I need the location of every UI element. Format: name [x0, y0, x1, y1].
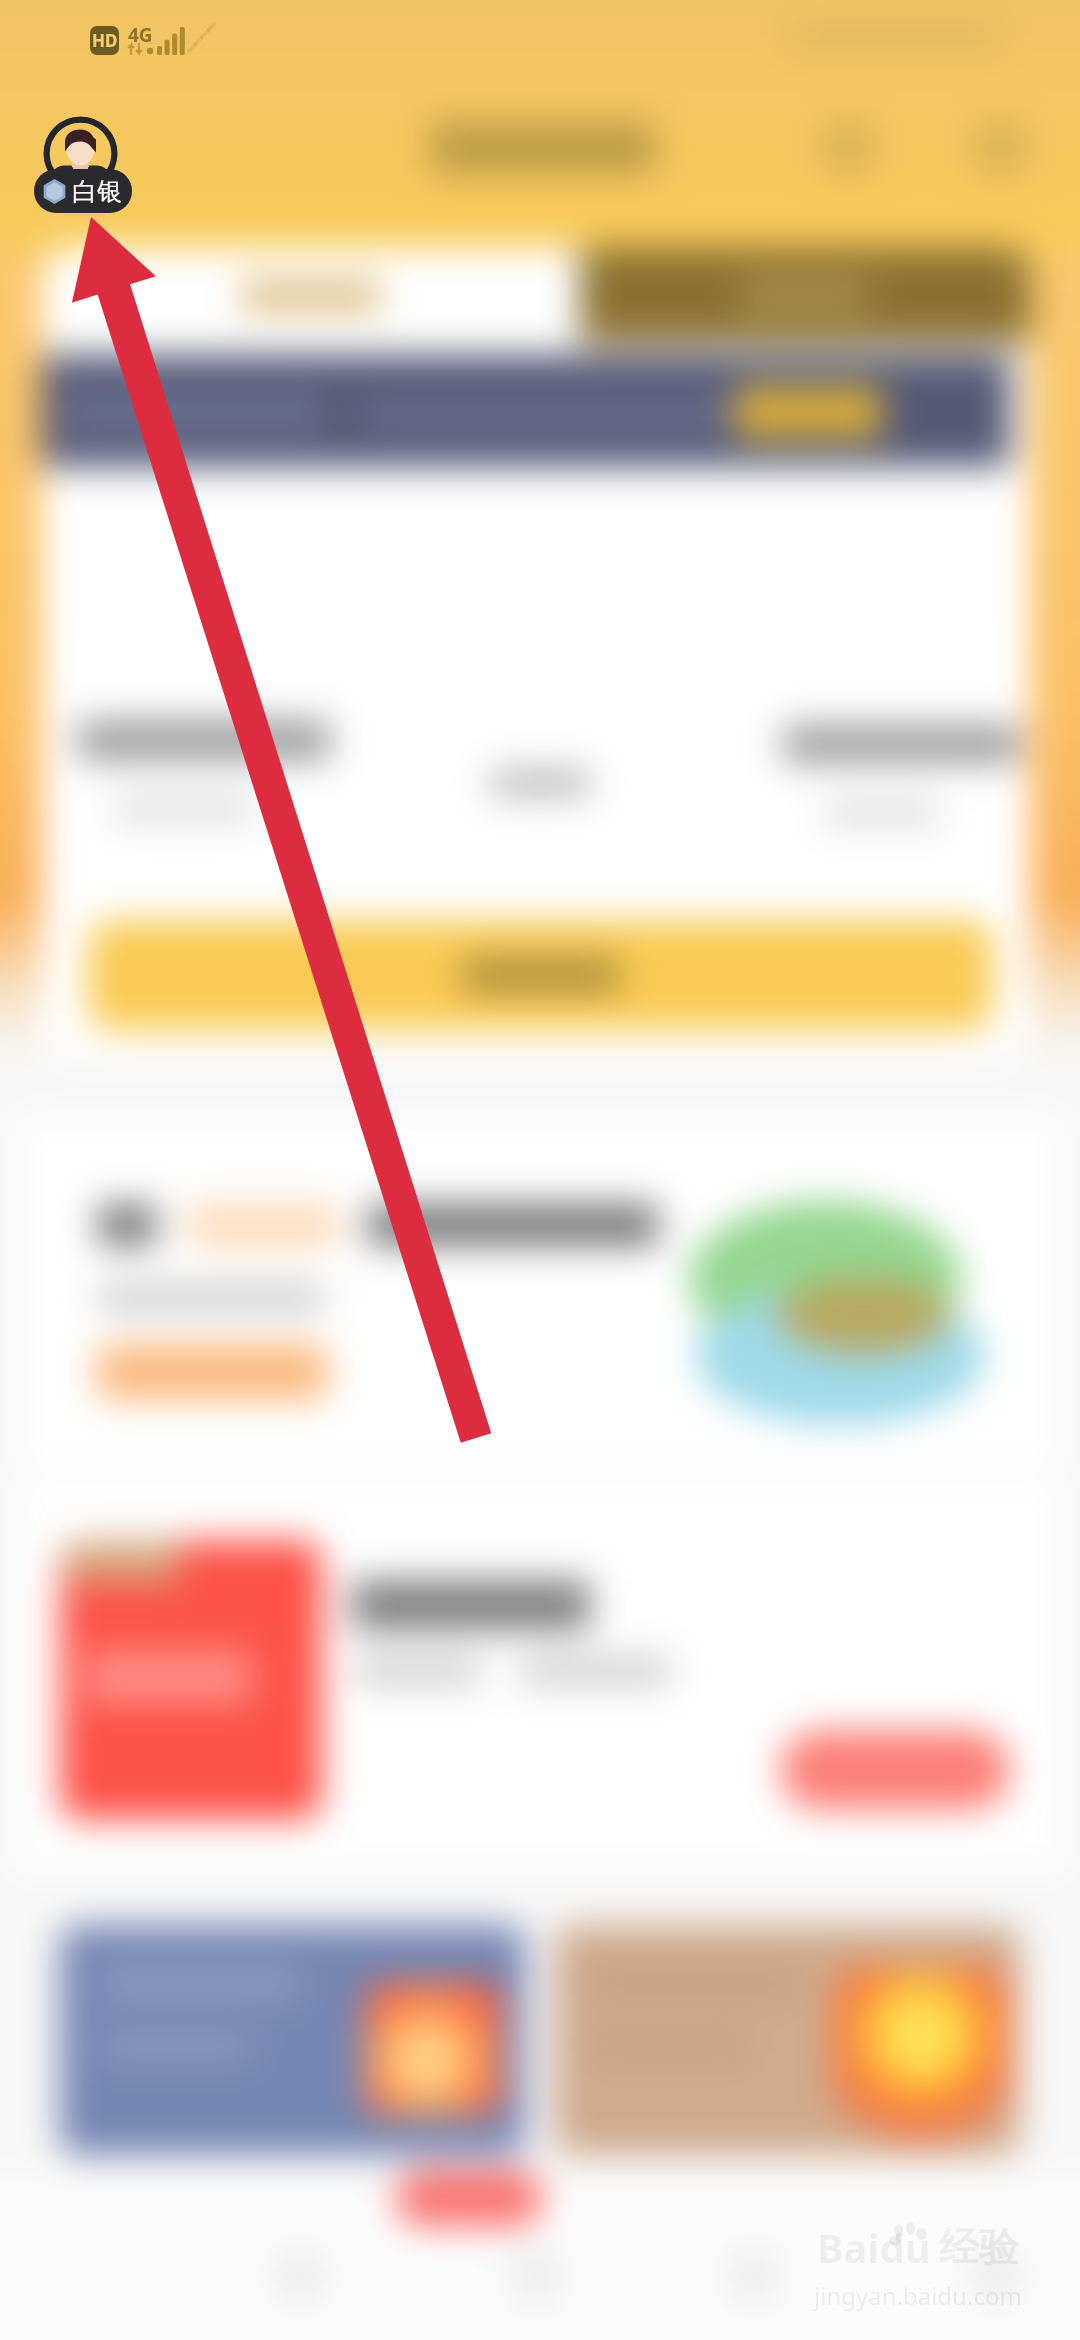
button[interactable] [430, 122, 655, 174]
button[interactable]: More [972, 120, 1028, 176]
button[interactable]: Me [968, 2248, 1024, 2304]
staticText: 白银 [72, 176, 122, 207]
button[interactable]: Search [820, 120, 876, 176]
button[interactable] [734, 385, 882, 439]
button[interactable] [42, 248, 580, 343]
staticText: jingyan.baidu.com [814, 2279, 1022, 2312]
button[interactable]: Profile avatar [34, 110, 134, 220]
button[interactable] [60, 1925, 525, 2155]
button[interactable]: 白银 [42, 169, 122, 213]
button[interactable] [18, 1118, 1062, 1470]
button[interactable] [88, 920, 993, 1030]
staticText: 经验 [939, 2222, 1019, 2272]
staticText: HD [92, 29, 118, 52]
button[interactable] [780, 1730, 1010, 1810]
button[interactable]: Action [396, 2170, 542, 2226]
button[interactable] [555, 1925, 1020, 2155]
staticText: 4G [128, 22, 153, 48]
staticText: Baidu [817, 2220, 931, 2274]
button[interactable] [18, 1480, 1062, 1870]
button[interactable] [580, 248, 1030, 343]
